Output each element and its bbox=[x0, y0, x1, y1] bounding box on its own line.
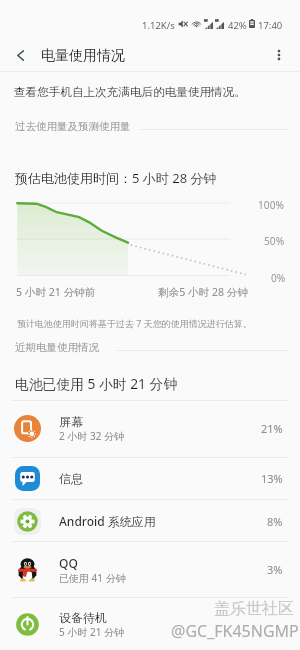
staticText: 近期电量使用情况 bbox=[15, 341, 99, 354]
staticText: QQ bbox=[59, 555, 78, 571]
staticText: 剩余5 小时 28 分钟 bbox=[158, 285, 249, 299]
staticText: 3% bbox=[267, 562, 283, 577]
staticText: 5 小时 21 分钟前 bbox=[16, 285, 96, 299]
staticText: 信息 bbox=[59, 471, 83, 486]
staticText: 42% bbox=[228, 19, 247, 32]
staticText: 50% bbox=[264, 234, 285, 248]
button[interactable]: QQ bbox=[0, 542, 300, 597]
staticText: 21% bbox=[261, 421, 283, 436]
staticText: 0% bbox=[271, 271, 286, 285]
staticText: 过去使用量及预测使用量 bbox=[15, 120, 131, 133]
staticText: 17:40 bbox=[258, 19, 283, 32]
staticText: 8% bbox=[267, 514, 283, 529]
button[interactable]: Android 系统应用 bbox=[0, 500, 300, 542]
staticText: 1.12K/s bbox=[142, 19, 175, 32]
staticText: Android 系统应用 bbox=[59, 513, 156, 529]
button[interactable]: 设备待机 bbox=[0, 597, 300, 650]
button[interactable]: Back bbox=[6, 41, 34, 69]
staticText: 已使用 41 分钟 bbox=[59, 571, 126, 585]
staticText: 预计电池使用时间将基于过去 7 天您的使用情况进行估算。 bbox=[17, 317, 252, 329]
staticText: 电池已使用 5 小时 21 分钟 bbox=[15, 374, 178, 393]
staticText: 100% bbox=[258, 198, 284, 212]
staticText: 13% bbox=[261, 471, 283, 486]
staticText: 盖乐世社区 bbox=[214, 599, 294, 619]
button[interactable]: 屏幕 bbox=[0, 400, 300, 457]
staticText: 设备待机 bbox=[59, 610, 107, 625]
staticText: @GC_FK45NGMP bbox=[171, 620, 299, 642]
button[interactable]: More options bbox=[265, 41, 293, 69]
staticText: 电量使用情况 bbox=[41, 47, 125, 65]
staticText: 5 小时 21 分钟 bbox=[59, 625, 124, 639]
staticText: 查看您手机自上次充满电后的电量使用情况。 bbox=[14, 85, 246, 100]
staticText: 2 小时 32 分钟 bbox=[59, 429, 124, 443]
staticText: 预估电池使用时间：5 小时 28 分钟 bbox=[15, 169, 217, 187]
button[interactable]: 信息 bbox=[0, 457, 300, 500]
staticText: 屏幕 bbox=[59, 414, 83, 429]
